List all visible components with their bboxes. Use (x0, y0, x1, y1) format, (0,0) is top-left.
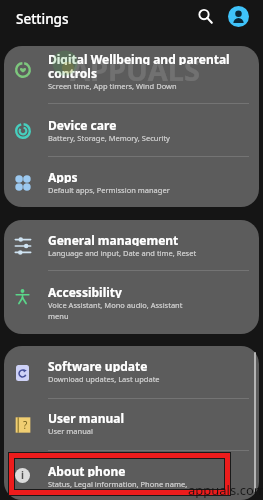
button[interactable]: General management (4, 220, 259, 270)
staticText: Battery, Storage, Memory, Security (48, 133, 170, 143)
staticText: Download updates, Last update (48, 374, 160, 384)
button[interactable]: i (4, 451, 259, 500)
staticText: About phone (48, 463, 126, 477)
staticText: Voice Assistant, Mono audio, Assistant (48, 300, 183, 310)
staticText: Digital Wellbeing and parental (48, 51, 230, 65)
staticText: controls (48, 65, 97, 79)
staticText: General management (48, 232, 179, 246)
staticText: User manual (48, 426, 93, 436)
staticText: Language and input, Date and time, Reset (48, 248, 197, 258)
button[interactable]: Account (228, 6, 249, 27)
staticText: Status, Legal information, Phone name, (48, 479, 188, 489)
staticText: appuals.com (188, 481, 263, 499)
button[interactable]: ? (4, 399, 259, 450)
button[interactable]: Accessibility (4, 271, 259, 334)
staticText: i (21, 468, 24, 482)
staticText: Settings (16, 10, 69, 28)
staticText: Device care (48, 117, 117, 131)
button[interactable]: Search (195, 6, 216, 27)
button[interactable]: Apps (4, 157, 259, 207)
button[interactable]: Device care (4, 104, 259, 156)
button[interactable]: Software update (4, 346, 259, 398)
staticText: Software update (48, 358, 148, 372)
staticText: Default apps, Permission manager (48, 185, 170, 195)
staticText: Accessibility (48, 284, 122, 298)
staticText: APPUALS (70, 50, 200, 89)
button[interactable]: Digital Wellbeing and parental (4, 46, 259, 103)
staticText: ? (23, 418, 28, 432)
staticText: Screen time, App timers, Wind Down (48, 81, 177, 91)
staticText: User manual (48, 410, 124, 424)
staticText: menu (48, 311, 69, 321)
staticText: Apps (48, 169, 78, 183)
